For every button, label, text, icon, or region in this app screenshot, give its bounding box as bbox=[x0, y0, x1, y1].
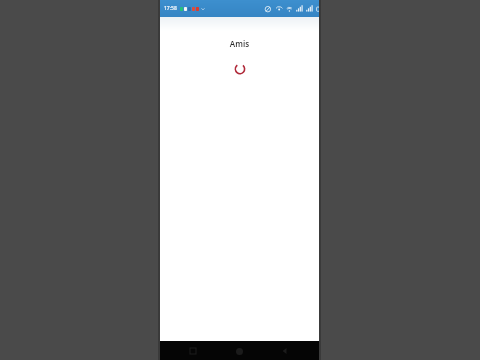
staticText: Amis bbox=[160, 38, 319, 49]
button[interactable]: Home bbox=[230, 342, 248, 360]
button[interactable]: Back bbox=[276, 342, 294, 360]
button[interactable]: Recent apps bbox=[184, 342, 202, 360]
staticText: 17:58 bbox=[164, 5, 177, 12]
